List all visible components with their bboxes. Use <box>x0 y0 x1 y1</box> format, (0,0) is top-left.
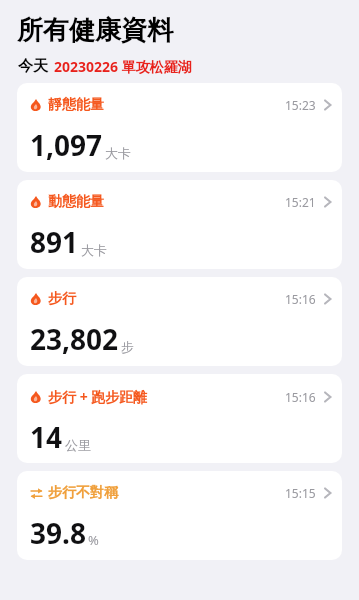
staticText: 15:21 <box>285 194 316 210</box>
staticText: 1,097 <box>30 126 103 164</box>
staticText: 大卡 <box>105 145 131 161</box>
staticText: 891 <box>30 223 79 261</box>
staticText: 靜態能量 <box>48 96 104 114</box>
staticText: 15:23 <box>285 97 316 113</box>
staticText: 步 <box>121 339 134 355</box>
staticText: 公里 <box>65 437 91 453</box>
staticText: 動態能量 <box>48 193 104 211</box>
staticText: 所有健康資料 <box>17 14 173 47</box>
button[interactable]: 步行不對稱 <box>17 471 342 560</box>
staticText: 今天 <box>18 57 48 76</box>
staticText: % <box>88 531 99 549</box>
staticText: 15:16 <box>285 389 316 405</box>
other: Open details <box>324 293 331 305</box>
staticText: 14 <box>30 418 63 456</box>
staticText: 15:16 <box>285 291 316 307</box>
staticText: 步行不對稱 <box>48 484 118 502</box>
staticText: 大卡 <box>81 242 107 258</box>
staticText: 15:15 <box>285 485 316 501</box>
button[interactable]: 靜態能量 <box>17 83 342 172</box>
staticText: 39.8 <box>30 514 86 552</box>
staticText: 20230226 單攻松羅湖 <box>54 57 192 76</box>
button[interactable]: 步行 + 跑步距離 <box>17 374 342 463</box>
button[interactable]: 步行 <box>17 277 342 366</box>
other: Open details <box>324 487 331 499</box>
button[interactable]: 動態能量 <box>17 180 342 269</box>
staticText: 步行 + 跑步距離 <box>48 387 148 406</box>
other: Open details <box>324 391 331 403</box>
staticText: 步行 <box>48 290 76 308</box>
other: Open details <box>324 99 331 111</box>
staticText: 23,802 <box>30 320 119 358</box>
other: Open details <box>324 196 331 208</box>
